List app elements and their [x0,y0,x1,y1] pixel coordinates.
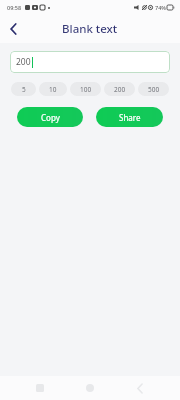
staticText: Copy [41,112,60,123]
button[interactable]: Back [0,16,26,42]
button[interactable]: 500 [138,82,169,96]
staticText: 500 [148,85,160,94]
button[interactable]: Home [80,378,100,398]
button[interactable]: Share [96,107,163,127]
button[interactable]: Back [130,378,150,398]
button[interactable]: 10 [39,82,67,96]
staticText: 200 [114,85,126,94]
staticText: 74% [155,4,166,11]
button[interactable]: 5 [11,82,36,96]
button[interactable]: 200 [104,82,135,96]
staticText: 100 [80,85,92,94]
staticText: Share [119,112,141,123]
staticText: 5 [22,85,26,94]
button[interactable]: 100 [70,82,101,96]
staticText: 200 [16,56,31,68]
staticText: 09:58 [7,4,22,11]
button[interactable]: 200 [10,51,170,73]
staticText: Blank text [62,21,118,37]
button[interactable]: Recents [30,378,50,398]
staticText: 10 [49,85,57,94]
button[interactable]: Copy [17,107,83,127]
